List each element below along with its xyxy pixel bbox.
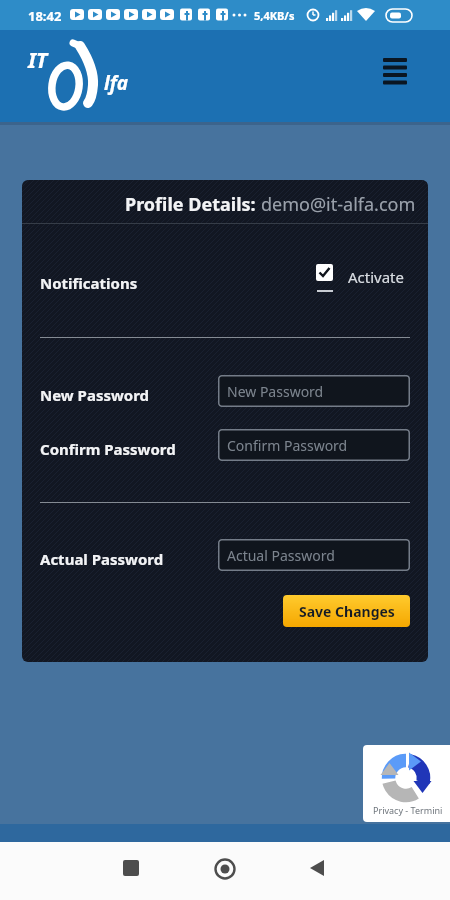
staticText: Privacy - Termini [373, 804, 443, 816]
staticText: Actual Password [227, 546, 335, 565]
staticText: Notifications [40, 273, 138, 293]
staticText: lfa [104, 70, 129, 96]
button[interactable]: Confirm Password [218, 429, 410, 461]
button[interactable]: New Password [218, 375, 410, 407]
staticText: 18:42 [28, 7, 62, 25]
button[interactable]: Save Changes [283, 595, 410, 627]
staticText: Profile Details: [125, 192, 261, 217]
staticText: New Password [40, 385, 150, 405]
staticText: New Password [227, 382, 324, 401]
staticText: demo@it-alfa.com [261, 192, 416, 217]
button[interactable]: Privacy - Termini [363, 745, 450, 822]
button[interactable]: Actual Password [218, 539, 410, 571]
staticText: Activate [348, 267, 404, 287]
button[interactable] [316, 264, 334, 282]
staticText: Save Changes [299, 602, 395, 621]
staticText: Confirm Password [40, 439, 176, 459]
button[interactable] [209, 853, 241, 885]
staticText: 5,4KB/s [254, 8, 295, 23]
staticText: Confirm Password [227, 436, 348, 455]
button[interactable] [375, 50, 415, 94]
button[interactable] [115, 852, 147, 884]
staticText: IT [28, 46, 48, 75]
staticText: Actual Password [40, 549, 164, 569]
button[interactable] [301, 852, 333, 884]
